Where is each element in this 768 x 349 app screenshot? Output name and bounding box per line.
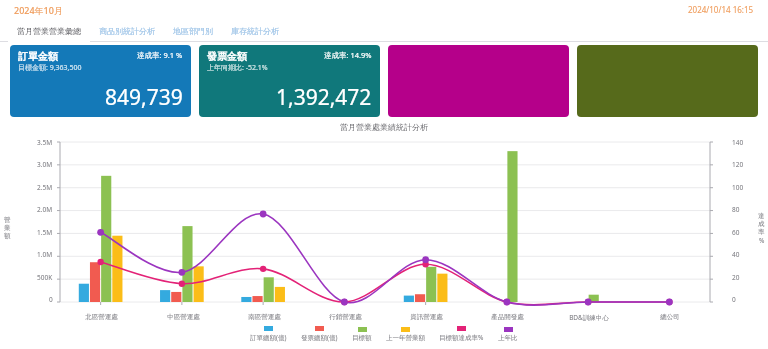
staticText: 當月營業處業績統計分析 <box>0 122 768 132</box>
staticText: 1,392,472 <box>276 83 372 112</box>
staticText: 849,739 <box>105 83 183 112</box>
staticText: 北區營運處 <box>85 313 118 321</box>
staticText: 120 <box>732 160 744 169</box>
staticText: 業 <box>4 224 11 232</box>
staticText: 目標金額: 9,363,500 <box>18 63 82 73</box>
staticText: 訂單金額 <box>18 50 58 63</box>
staticText: 資訊營運處 <box>410 313 443 321</box>
staticText: 2024/10/14 16:15 <box>688 4 754 15</box>
staticText: 3.5M <box>37 138 53 147</box>
staticText: 成 <box>758 220 765 228</box>
staticText: 行銷營運處 <box>329 313 362 321</box>
staticText: 100 <box>732 183 744 192</box>
staticText: 2024年10月 <box>14 4 63 16</box>
staticText: 上年比 <box>498 334 518 342</box>
staticText: 額 <box>4 232 11 240</box>
staticText: 3.0M <box>37 160 53 169</box>
staticText: 產品開發處 <box>491 313 524 321</box>
staticText: 140 <box>732 138 744 147</box>
staticText: 發票金額 <box>207 50 247 63</box>
staticText: 20 <box>732 273 740 282</box>
button[interactable]: 目標額 <box>345 327 379 342</box>
button[interactable]: 目標額達成率% <box>432 326 491 342</box>
button[interactable]: Metric card 4 <box>577 45 758 117</box>
staticText: 發票總額(億) <box>301 333 338 342</box>
staticText: 地區部門別 <box>173 26 213 36</box>
button[interactable]: 上年比 <box>491 327 525 342</box>
staticText: 1.0M <box>37 250 53 259</box>
staticText: 達成率: 14.9% <box>324 50 372 60</box>
staticText: 60 <box>732 228 740 237</box>
staticText: % <box>759 236 765 245</box>
staticText: 目標額 <box>352 334 372 342</box>
button[interactable]: 發票總額(億) <box>294 326 345 342</box>
button[interactable]: 訂單金額 <box>10 45 191 117</box>
staticText: 當月營業營業彙總 <box>17 26 81 36</box>
staticText: 0 <box>49 295 53 304</box>
button[interactable]: 地區部門別 <box>164 19 222 42</box>
staticText: 40 <box>732 250 740 259</box>
staticText: 上年同期比: -52.1% <box>207 63 268 73</box>
button[interactable]: 發票金額 <box>199 45 380 117</box>
staticText: BD&訓練中心 <box>569 313 609 322</box>
staticText: 總公司 <box>660 313 680 321</box>
button[interactable]: Metric card 3 <box>388 45 569 117</box>
button[interactable]: 訂單總額(億) <box>243 326 294 342</box>
staticText: 上一年營業額 <box>386 334 425 342</box>
staticText: 營 <box>4 216 11 224</box>
button[interactable]: 庫存統計分析 <box>222 19 288 42</box>
button[interactable]: 上一年營業額 <box>379 327 432 342</box>
staticText: 80 <box>732 205 740 214</box>
staticText: 率 <box>758 228 765 236</box>
staticText: 商品別統計分析 <box>99 26 155 36</box>
staticText: 中區營運處 <box>167 313 200 321</box>
staticText: 達 <box>758 212 765 220</box>
staticText: 500K <box>37 273 53 282</box>
button[interactable]: 當月營業營業彙總 <box>8 19 90 42</box>
staticText: 2.5M <box>37 183 53 192</box>
button[interactable]: 商品別統計分析 <box>90 19 164 42</box>
staticText: 目標額達成率% <box>439 333 484 342</box>
staticText: 0 <box>732 295 736 304</box>
staticText: 南區營運處 <box>248 313 281 321</box>
staticText: 1.5M <box>37 228 53 237</box>
staticText: 達成率: 9.1 % <box>137 50 183 60</box>
staticText: 2.0M <box>37 205 53 214</box>
staticText: 庫存統計分析 <box>231 26 279 36</box>
staticText: 訂單總額(億) <box>250 333 287 342</box>
